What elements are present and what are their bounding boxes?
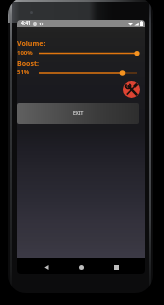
staticText: 100% bbox=[17, 49, 33, 57]
button[interactable]: Recent apps bbox=[109, 260, 124, 274]
button[interactable]: Tools bbox=[123, 81, 140, 98]
staticText: 51% bbox=[17, 68, 30, 76]
button[interactable]: Home bbox=[74, 260, 89, 274]
button[interactable]: EXIT bbox=[17, 103, 139, 124]
staticText: EXIT bbox=[73, 110, 84, 117]
staticText: 4:41 bbox=[21, 20, 31, 27]
button[interactable]: Back bbox=[39, 260, 54, 274]
staticText: Volume: bbox=[17, 39, 46, 49]
staticText: Boost: bbox=[17, 59, 39, 69]
